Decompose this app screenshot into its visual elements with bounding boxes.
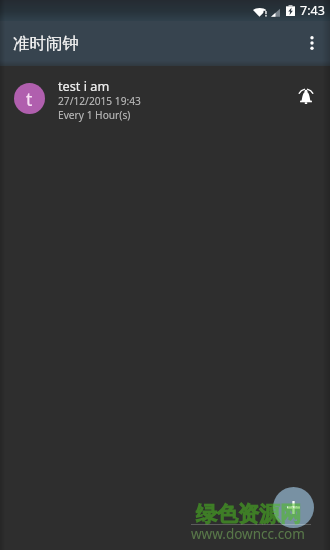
- staticText: t: [26, 87, 33, 111]
- button[interactable]: Add alarm: [273, 487, 314, 528]
- staticText: www.downcc.com: [191, 525, 305, 543]
- staticText: 绿色资源网: [196, 501, 301, 527]
- button[interactable]: Alarm enabled: [290, 80, 322, 112]
- staticText: 7:43: [300, 2, 325, 19]
- button[interactable]: t: [0, 70, 330, 126]
- staticText: 27/12/2015 19:43: [58, 94, 141, 108]
- staticText: 准时闹钟: [13, 33, 79, 54]
- staticText: Every 1 Hour(s): [58, 108, 131, 122]
- staticText: test i am: [58, 77, 110, 94]
- button[interactable]: More options: [294, 25, 330, 61]
